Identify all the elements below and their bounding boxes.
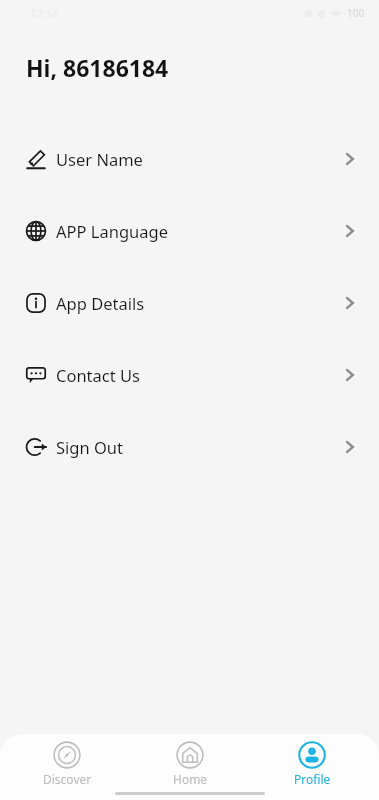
staticText: 17:34 [30,6,59,21]
staticText: User Name [56,148,143,170]
button[interactable]: Home [135,734,245,787]
button[interactable]: User Name [0,123,379,195]
staticText: Home [173,771,208,787]
staticText: APP Language [56,220,168,242]
button[interactable]: Contact Us [0,339,379,411]
staticText: 100 [347,6,365,20]
button[interactable]: APP Language [0,195,379,267]
button[interactable]: App Details [0,267,379,339]
staticText: Contact Us [56,364,140,386]
button[interactable]: Sign Out [0,411,379,483]
staticText: Discover [43,771,92,787]
staticText: Profile [294,771,331,787]
button[interactable]: Discover [12,734,122,787]
staticText: App Details [56,292,145,314]
staticText: Sign Out [56,436,123,458]
staticText: Hi, 86186184 [26,52,169,83]
button[interactable]: Profile [257,734,367,787]
